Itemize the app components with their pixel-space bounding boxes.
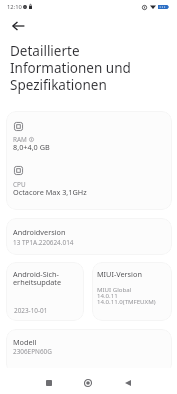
staticText: MIUI Global 14.0.11 14.0.11.0(TMFEUXM) xyxy=(97,287,156,305)
button[interactable]: Home xyxy=(76,371,100,394)
button[interactable]: Android-Sich- erheitsupdate xyxy=(6,262,84,321)
staticText: RAM xyxy=(13,135,27,143)
button[interactable]: MIUI-Version xyxy=(92,262,172,321)
staticText: Octacore Max 3,1GHz xyxy=(13,188,87,197)
staticText: 12:10 xyxy=(7,3,22,11)
button[interactable]: Recents xyxy=(37,371,61,394)
button[interactable]: Modell xyxy=(6,329,172,374)
staticText: 8,0+4,0 GB xyxy=(13,143,50,152)
staticText: Modell xyxy=(13,338,37,347)
staticText: CPU xyxy=(13,180,26,188)
staticText: 13 TP1A.220624.014 xyxy=(13,238,74,246)
button[interactable]: Back xyxy=(7,15,29,37)
staticText: 2023-10-01 xyxy=(14,306,48,314)
staticText: Androidversion xyxy=(13,228,66,237)
button[interactable]: Back xyxy=(116,371,140,394)
button[interactable]: Androidversion xyxy=(6,218,172,255)
button[interactable]: RAM xyxy=(6,111,172,210)
staticText: Android-Sich- erheitsupdate xyxy=(13,271,62,287)
staticText: MIUI-Version xyxy=(97,270,142,279)
staticText: 2306EPN60G xyxy=(13,347,52,355)
staticText: Detaillierte Informationen und Spezifika… xyxy=(10,43,131,94)
